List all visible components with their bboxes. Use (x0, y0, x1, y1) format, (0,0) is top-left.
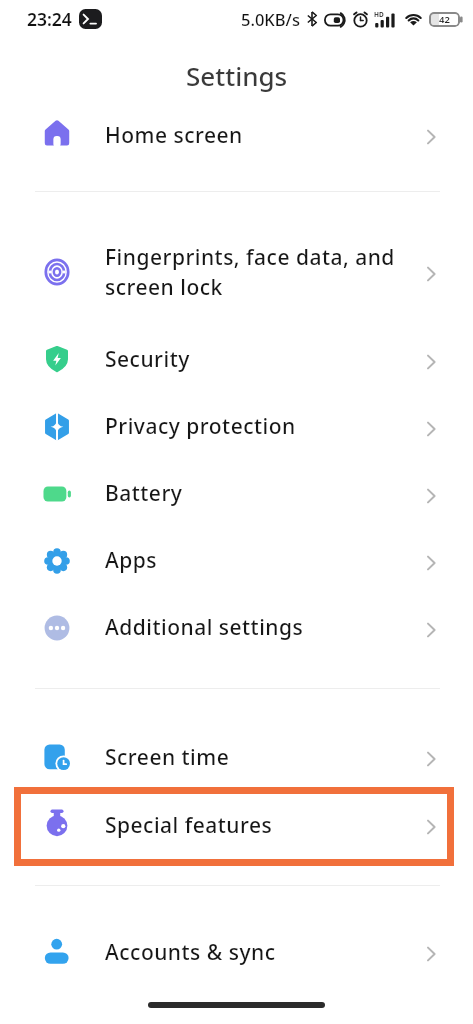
staticText: Security (105, 345, 190, 374)
staticText: HD (374, 10, 384, 19)
staticText: 42 (439, 13, 450, 26)
staticText: 23:24 (27, 7, 72, 31)
button[interactable]: Privacy protection (0, 395, 473, 462)
button[interactable]: Home screen (0, 103, 473, 171)
button[interactable]: Battery (0, 462, 473, 529)
staticText: Apps (105, 546, 158, 575)
staticText: Home screen (105, 121, 243, 150)
staticText: Special features (105, 811, 273, 840)
button[interactable]: Accounts & sync (0, 920, 473, 988)
button[interactable]: Special features (0, 793, 473, 861)
staticText: Privacy protection (105, 412, 296, 441)
button[interactable]: Security (0, 328, 473, 395)
staticText: Additional settings (105, 613, 304, 642)
button[interactable]: Additional settings (0, 596, 473, 663)
staticText: Fingerprints, face data, and screen lock (105, 243, 395, 301)
button[interactable]: Apps (0, 529, 473, 596)
staticText: 5.0KB/s (241, 8, 300, 30)
button[interactable]: Screen time (0, 725, 473, 793)
staticText: Accounts & sync (105, 938, 276, 967)
staticText: Settings (186, 58, 288, 93)
staticText: Battery (105, 479, 183, 508)
button[interactable]: Fingerprints, face data, and screen lock (0, 229, 473, 319)
staticText: Screen time (105, 743, 230, 772)
